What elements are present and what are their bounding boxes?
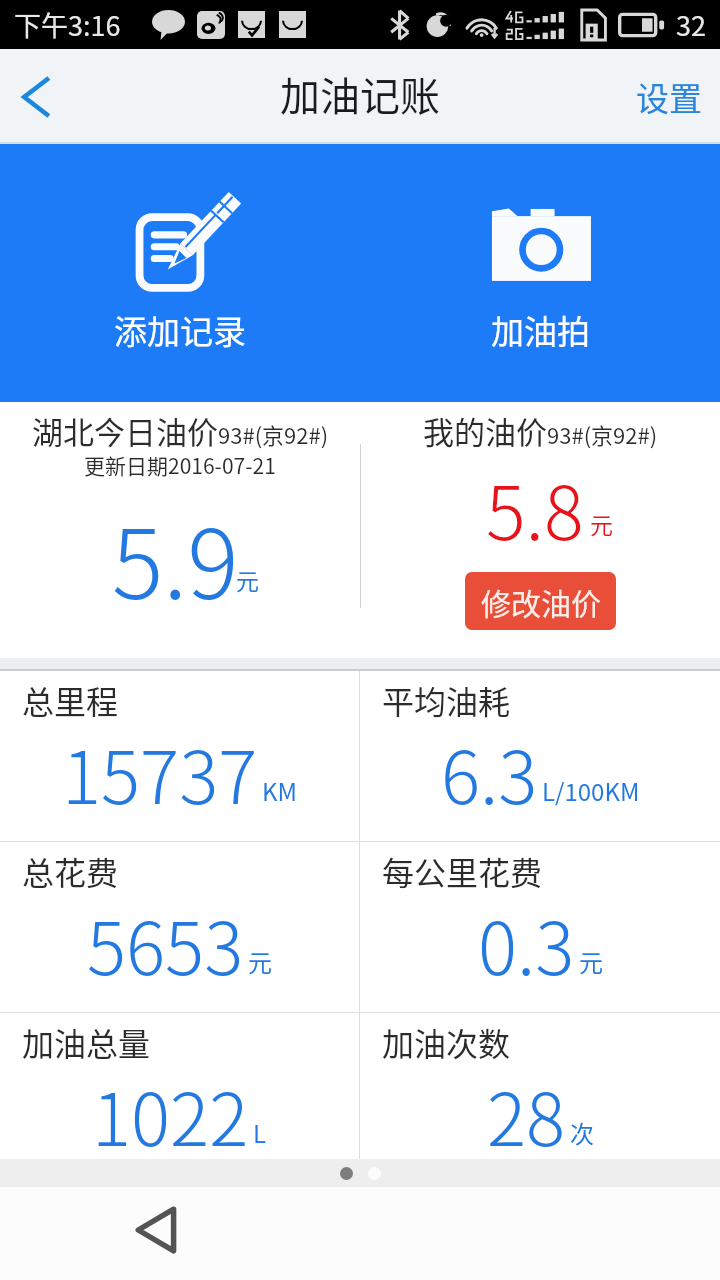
staticText: 加油总量 — [22, 1019, 151, 1065]
staticText: 湖北今日油价 — [32, 408, 218, 453]
staticText: 加油记账 — [280, 65, 440, 123]
button[interactable]: Back — [0, 49, 79, 144]
button[interactable]: 总里程 — [0, 671, 359, 841]
staticText: 次 — [570, 1115, 594, 1150]
staticText: 32 — [676, 5, 706, 44]
staticText: 元 — [579, 944, 603, 979]
staticText: 元 — [236, 563, 259, 596]
staticText: 元 — [590, 507, 613, 540]
staticText: L — [253, 1115, 267, 1150]
button[interactable]: 设置 — [616, 49, 720, 144]
staticText: 加油拍 — [491, 306, 590, 354]
staticText: 下午3:16 — [14, 5, 121, 44]
staticText: 5.9 — [112, 488, 239, 627]
staticText: 6.3 — [441, 719, 538, 825]
staticText: 更新日期2016-07-21 — [84, 450, 276, 480]
button[interactable]: 每公里花费 — [360, 842, 720, 1012]
button[interactable]: Back — [120, 1192, 196, 1268]
staticText: 0.3 — [478, 890, 575, 996]
staticText: 5.8 — [486, 454, 584, 561]
button[interactable]: 添加记录 — [0, 144, 360, 402]
button[interactable]: 修改油价 — [465, 572, 616, 630]
staticText: 28 — [487, 1061, 566, 1167]
staticText: 添加记录 — [114, 306, 246, 354]
staticText: 平均油耗 — [382, 677, 511, 723]
staticText: 15737 — [62, 719, 258, 825]
staticText: L/100KM — [542, 773, 640, 808]
staticText: 元 — [248, 944, 272, 979]
staticText: 每公里花费 — [382, 848, 543, 894]
staticText: 总花费 — [22, 848, 119, 894]
staticText: 设置 — [636, 73, 702, 121]
button[interactable]: 加油总量 — [0, 1013, 359, 1159]
button[interactable]: 加油拍 — [360, 144, 720, 402]
staticText: 我的油价 — [423, 408, 547, 453]
staticText: 总里程 — [22, 677, 119, 723]
staticText: 5653 — [87, 890, 244, 996]
button[interactable]: 平均油耗 — [360, 671, 720, 841]
button[interactable]: 总花费 — [0, 842, 359, 1012]
staticText: KM — [262, 773, 297, 808]
button[interactable]: 加油次数 — [360, 1013, 720, 1159]
staticText: 93#(京92#) — [218, 418, 329, 450]
staticText: 修改油价 — [481, 580, 601, 623]
staticText: 1022 — [92, 1061, 249, 1167]
staticText: 加油次数 — [382, 1019, 511, 1065]
staticText: 93#(京92#) — [547, 418, 658, 450]
